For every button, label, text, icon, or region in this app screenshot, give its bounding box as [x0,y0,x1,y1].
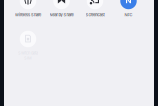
staticText: Nearby Share [49,12,73,17]
button[interactable] [20,31,36,47]
button[interactable] [53,0,70,9]
staticText: Switch data [18,51,38,55]
staticText: Screencast [85,12,104,17]
staticText: NFC [124,12,132,17]
button[interactable] [20,0,36,9]
staticText: Wireless Share [15,12,41,17]
button[interactable] [87,0,103,9]
button[interactable] [120,0,137,9]
